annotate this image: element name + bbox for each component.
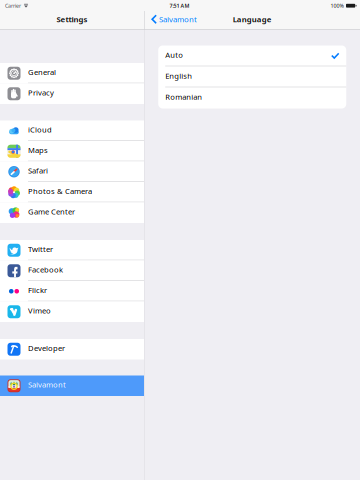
button[interactable]: Photos & Camera bbox=[0, 182, 144, 202]
staticText: 7:51 AM bbox=[169, 2, 189, 9]
staticText: 100% bbox=[330, 2, 343, 9]
staticText: Salvamont bbox=[28, 379, 66, 390]
button[interactable]: Privacy bbox=[0, 83, 144, 104]
staticText: Twitter bbox=[28, 244, 53, 254]
staticText: Facebook bbox=[28, 264, 63, 275]
button[interactable]: iCloud bbox=[0, 120, 144, 141]
staticText: Carrier bbox=[5, 2, 21, 9]
staticText: Settings bbox=[56, 14, 87, 24]
button[interactable]: English bbox=[158, 66, 346, 87]
staticText: Safari bbox=[28, 165, 48, 176]
staticText: Language bbox=[233, 14, 272, 24]
staticText: iCloud bbox=[28, 124, 52, 135]
button[interactable]: Safari bbox=[0, 161, 144, 182]
button[interactable]: Vimeo bbox=[0, 301, 144, 322]
staticText: Maps bbox=[28, 145, 48, 155]
staticText: English bbox=[165, 71, 192, 81]
button[interactable]: Facebook bbox=[0, 260, 144, 281]
button[interactable]: Salvamont bbox=[0, 375, 144, 396]
staticText: Romanian bbox=[165, 92, 202, 102]
button[interactable]: Maps bbox=[0, 141, 144, 161]
button[interactable]: Salvamont bbox=[144, 11, 200, 29]
button[interactable]: Game Center bbox=[0, 202, 144, 223]
staticText: Privacy bbox=[28, 87, 54, 98]
staticText: Salvamont bbox=[159, 14, 197, 24]
staticText: Vimeo bbox=[28, 305, 51, 316]
staticText: Flickr bbox=[28, 285, 47, 295]
staticText: Game Center bbox=[28, 206, 75, 217]
staticText: General bbox=[28, 67, 56, 77]
button[interactable]: General bbox=[0, 63, 144, 83]
staticText: Photos & Camera bbox=[28, 186, 92, 196]
button[interactable]: Developer bbox=[0, 339, 144, 359]
button[interactable]: Romanian bbox=[158, 87, 346, 108]
button[interactable]: Flickr bbox=[0, 281, 144, 301]
staticText: Developer bbox=[28, 343, 65, 353]
button[interactable]: Auto bbox=[158, 45, 346, 66]
button[interactable]: Twitter bbox=[0, 240, 144, 260]
staticText: Auto bbox=[165, 50, 183, 60]
